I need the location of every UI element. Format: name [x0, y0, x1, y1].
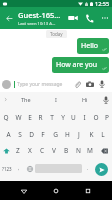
staticText: Last seen 10:13 A... [18, 21, 56, 27]
button[interactable]: H [61, 127, 73, 142]
button[interactable]: R [35, 110, 46, 125]
staticText: F [41, 130, 45, 139]
button[interactable]: Camera [83, 76, 96, 92]
staticText: A [6, 130, 11, 139]
staticText: Hi [82, 96, 88, 103]
staticText: K [89, 130, 94, 139]
button[interactable]: Attach [71, 76, 83, 92]
button[interactable]: N [72, 143, 84, 158]
button[interactable]: M [84, 143, 96, 158]
button[interactable]: L [97, 127, 109, 142]
staticText: Today [50, 31, 63, 37]
staticText: O [93, 113, 99, 122]
button[interactable]: ?123 [0, 161, 14, 176]
staticText: Guest-165... [18, 10, 61, 20]
staticText: I [83, 113, 86, 122]
button[interactable]: J [73, 127, 85, 142]
button[interactable]: Recents [80, 183, 96, 199]
staticText: V [52, 146, 56, 155]
button[interactable]: Backspace [96, 143, 112, 158]
staticText: R [38, 113, 43, 122]
button[interactable]: Call [81, 7, 97, 29]
button[interactable]: I [41, 92, 70, 107]
button[interactable]: W [12, 110, 24, 125]
button[interactable]: Send [95, 163, 108, 176]
button[interactable]: How are you [52, 57, 109, 73]
button[interactable]: Hi [70, 92, 99, 107]
button[interactable]: I [79, 110, 90, 125]
staticText: 12:55 [95, 0, 110, 7]
button[interactable]: O [90, 110, 101, 125]
button[interactable]: Back [16, 183, 32, 199]
button[interactable]: Change language [24, 161, 35, 176]
button[interactable]: Emoji [2, 80, 11, 89]
button[interactable]: B [60, 143, 72, 158]
button[interactable]: D [25, 127, 37, 142]
button[interactable]: F [37, 127, 49, 142]
staticText: D [29, 130, 34, 139]
button[interactable]: Hello [77, 38, 109, 54]
staticText: The [21, 96, 31, 103]
button[interactable]: Period [82, 161, 93, 176]
button[interactable]: Voice input [99, 92, 112, 107]
button[interactable]: T [46, 110, 57, 125]
button[interactable]: Q [0, 110, 12, 125]
button[interactable]: Home [48, 183, 64, 199]
staticText: Z [16, 146, 20, 155]
button[interactable]: More options [97, 7, 112, 29]
staticText: W [15, 113, 22, 122]
staticText: L [101, 130, 105, 139]
button[interactable]: Expand suggestions [0, 92, 11, 107]
staticText: ?123 [2, 166, 12, 172]
button[interactable]: E [24, 110, 35, 125]
staticText: P [105, 113, 109, 122]
button[interactable]: X [24, 143, 36, 158]
button[interactable]: Voice message [96, 76, 108, 92]
button[interactable]: U [68, 110, 79, 125]
staticText: I [55, 96, 57, 103]
staticText: T [50, 113, 54, 122]
button[interactable]: G [49, 127, 61, 142]
staticText: , [18, 165, 20, 172]
staticText: Hello [81, 41, 98, 51]
staticText: Type your message [17, 81, 71, 88]
staticText: U [71, 113, 76, 122]
button[interactable]: Y [57, 110, 68, 125]
button[interactable]: Back [0, 7, 18, 29]
button[interactable]: V [48, 143, 60, 158]
staticText: How are you [56, 60, 98, 70]
button[interactable]: Shift [0, 143, 12, 158]
button[interactable]: A [3, 127, 14, 142]
staticText: H [65, 130, 70, 139]
button[interactable]: P [101, 110, 112, 125]
staticText: B [64, 146, 69, 155]
button[interactable]: S [14, 127, 25, 142]
staticText: N [76, 146, 81, 155]
button[interactable]: C [36, 143, 48, 158]
staticText: M [87, 146, 93, 155]
staticText: . [87, 165, 89, 172]
button[interactable]: The [11, 92, 41, 107]
staticText: J [78, 130, 80, 139]
staticText: E [28, 113, 32, 122]
button[interactable]: Comma [14, 161, 24, 176]
staticText: Q [3, 113, 9, 122]
staticText: Y [61, 113, 65, 122]
staticText: G [53, 130, 58, 139]
button[interactable]: Z [12, 143, 24, 158]
button[interactable]: Video call [65, 7, 81, 29]
button[interactable]: K [85, 127, 97, 142]
staticText: C [40, 146, 45, 155]
staticText: X [28, 146, 32, 155]
staticText: S [18, 130, 22, 139]
